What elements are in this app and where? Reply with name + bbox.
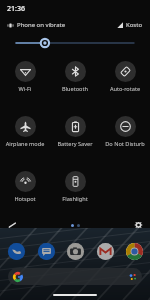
button[interactable]: Airplane mode bbox=[0, 112, 50, 148]
button[interactable]: Wi-Fi bbox=[0, 57, 50, 93]
button[interactable]: Settings bbox=[130, 222, 146, 228]
staticText: Hotspot bbox=[0, 195, 50, 203]
staticText: 21:36 bbox=[7, 4, 25, 14]
button[interactable]: Search bbox=[8, 268, 142, 285]
button[interactable]: Gmail bbox=[95, 241, 115, 261]
staticText: Phone on vibrate bbox=[17, 21, 66, 29]
button[interactable]: Flashlight bbox=[50, 167, 100, 203]
button[interactable]: Do Not Disturb bbox=[100, 112, 150, 148]
button[interactable]: Camera bbox=[65, 241, 85, 261]
button[interactable]: Messages bbox=[36, 241, 56, 261]
button[interactable]: Hotspot bbox=[0, 167, 50, 203]
button[interactable]: Chrome bbox=[124, 241, 144, 261]
button[interactable]: Auto-rotate bbox=[100, 57, 150, 93]
button[interactable]: Battery Saver bbox=[50, 112, 100, 148]
button[interactable]: Edit tiles bbox=[4, 222, 20, 228]
button[interactable]: Bluetooth bbox=[50, 57, 100, 93]
staticText: Flashlight bbox=[50, 195, 100, 203]
staticText: Auto-rotate bbox=[100, 85, 150, 93]
staticText: Wi-Fi bbox=[0, 85, 50, 93]
staticText: Kosto bbox=[126, 21, 143, 29]
staticText: Bluetooth bbox=[50, 85, 100, 93]
staticText: Battery Saver bbox=[50, 140, 100, 148]
staticText: Airplane mode bbox=[0, 140, 50, 148]
staticText: Do Not Disturb bbox=[100, 140, 150, 148]
button[interactable]: Phone bbox=[6, 241, 26, 261]
button[interactable]: Brightness bbox=[16, 32, 134, 54]
